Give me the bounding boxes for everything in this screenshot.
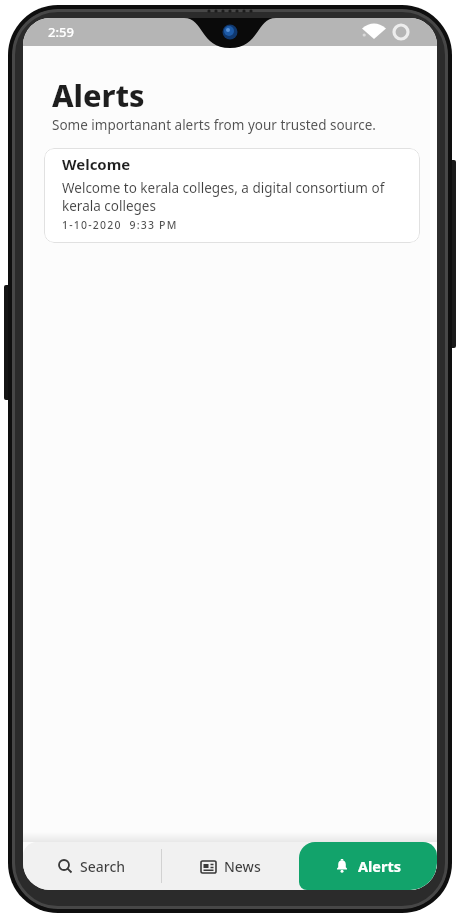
staticText: Welcome to kerala colleges, a digital co… [62,179,408,215]
staticText: News [224,857,261,876]
button[interactable]: Search [23,842,161,890]
staticText: Some importanant alerts from your truste… [52,116,376,134]
staticText: Welcome [62,154,131,174]
staticText: 1-10-2020 9:33 PM [62,218,178,232]
staticText: Alerts [52,74,145,116]
staticText: 2:59 [48,23,74,41]
staticText: Search [80,857,126,876]
button[interactable]: Welcome [44,148,420,243]
button[interactable]: News [162,842,299,890]
staticText: Alerts [358,856,402,876]
button[interactable]: Alerts [299,842,437,890]
